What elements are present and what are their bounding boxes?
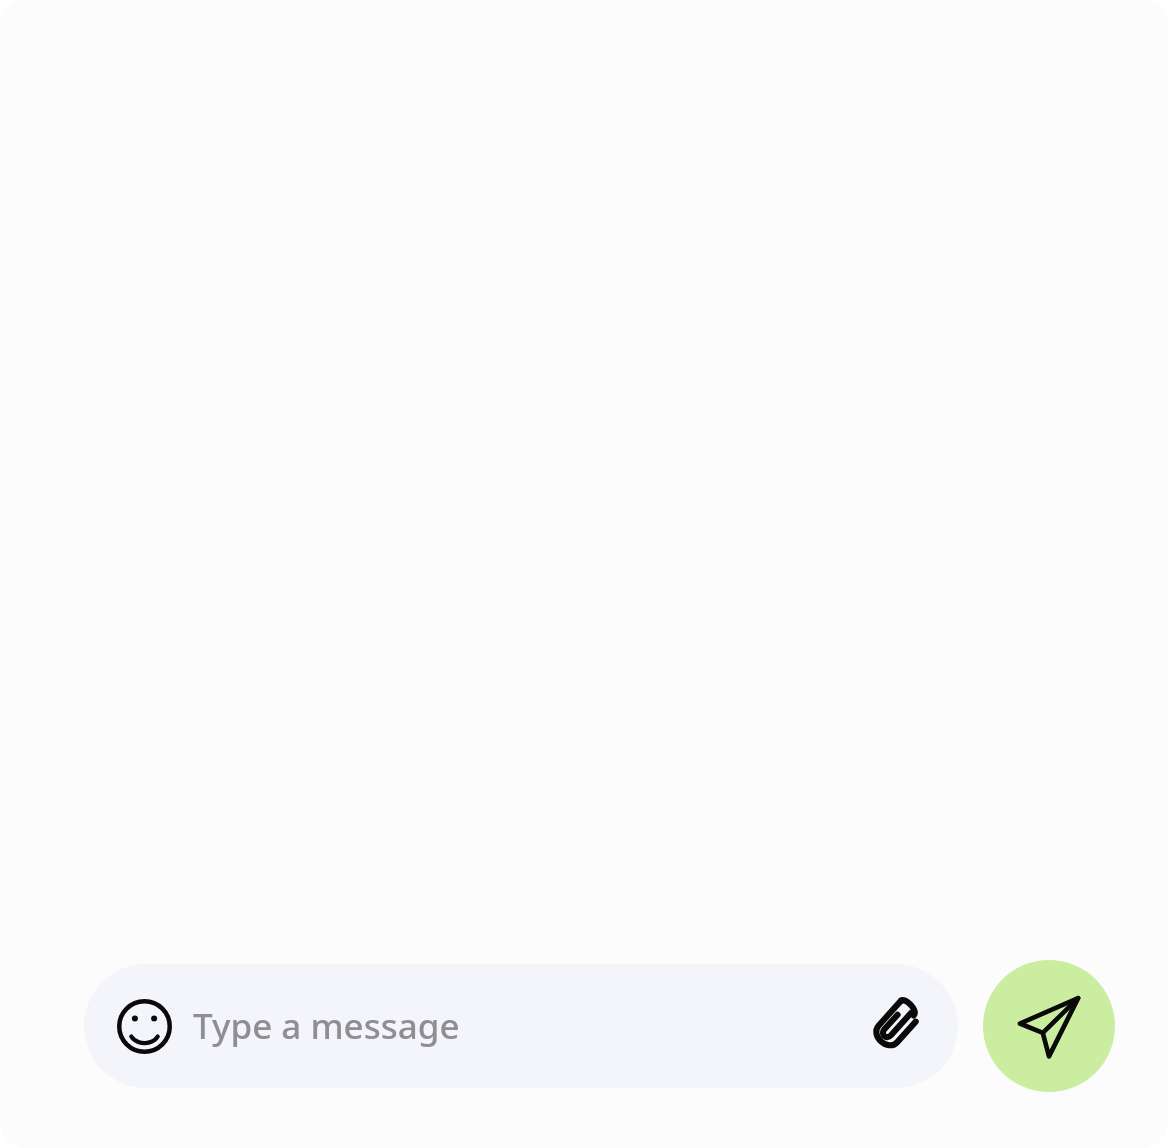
staticText: Type a message	[193, 1002, 852, 1050]
button[interactable]: Send	[983, 960, 1115, 1092]
button[interactable]: Emoji	[114, 996, 174, 1056]
button[interactable]: Attach file	[864, 995, 926, 1057]
button[interactable]: Emoji	[84, 964, 958, 1088]
